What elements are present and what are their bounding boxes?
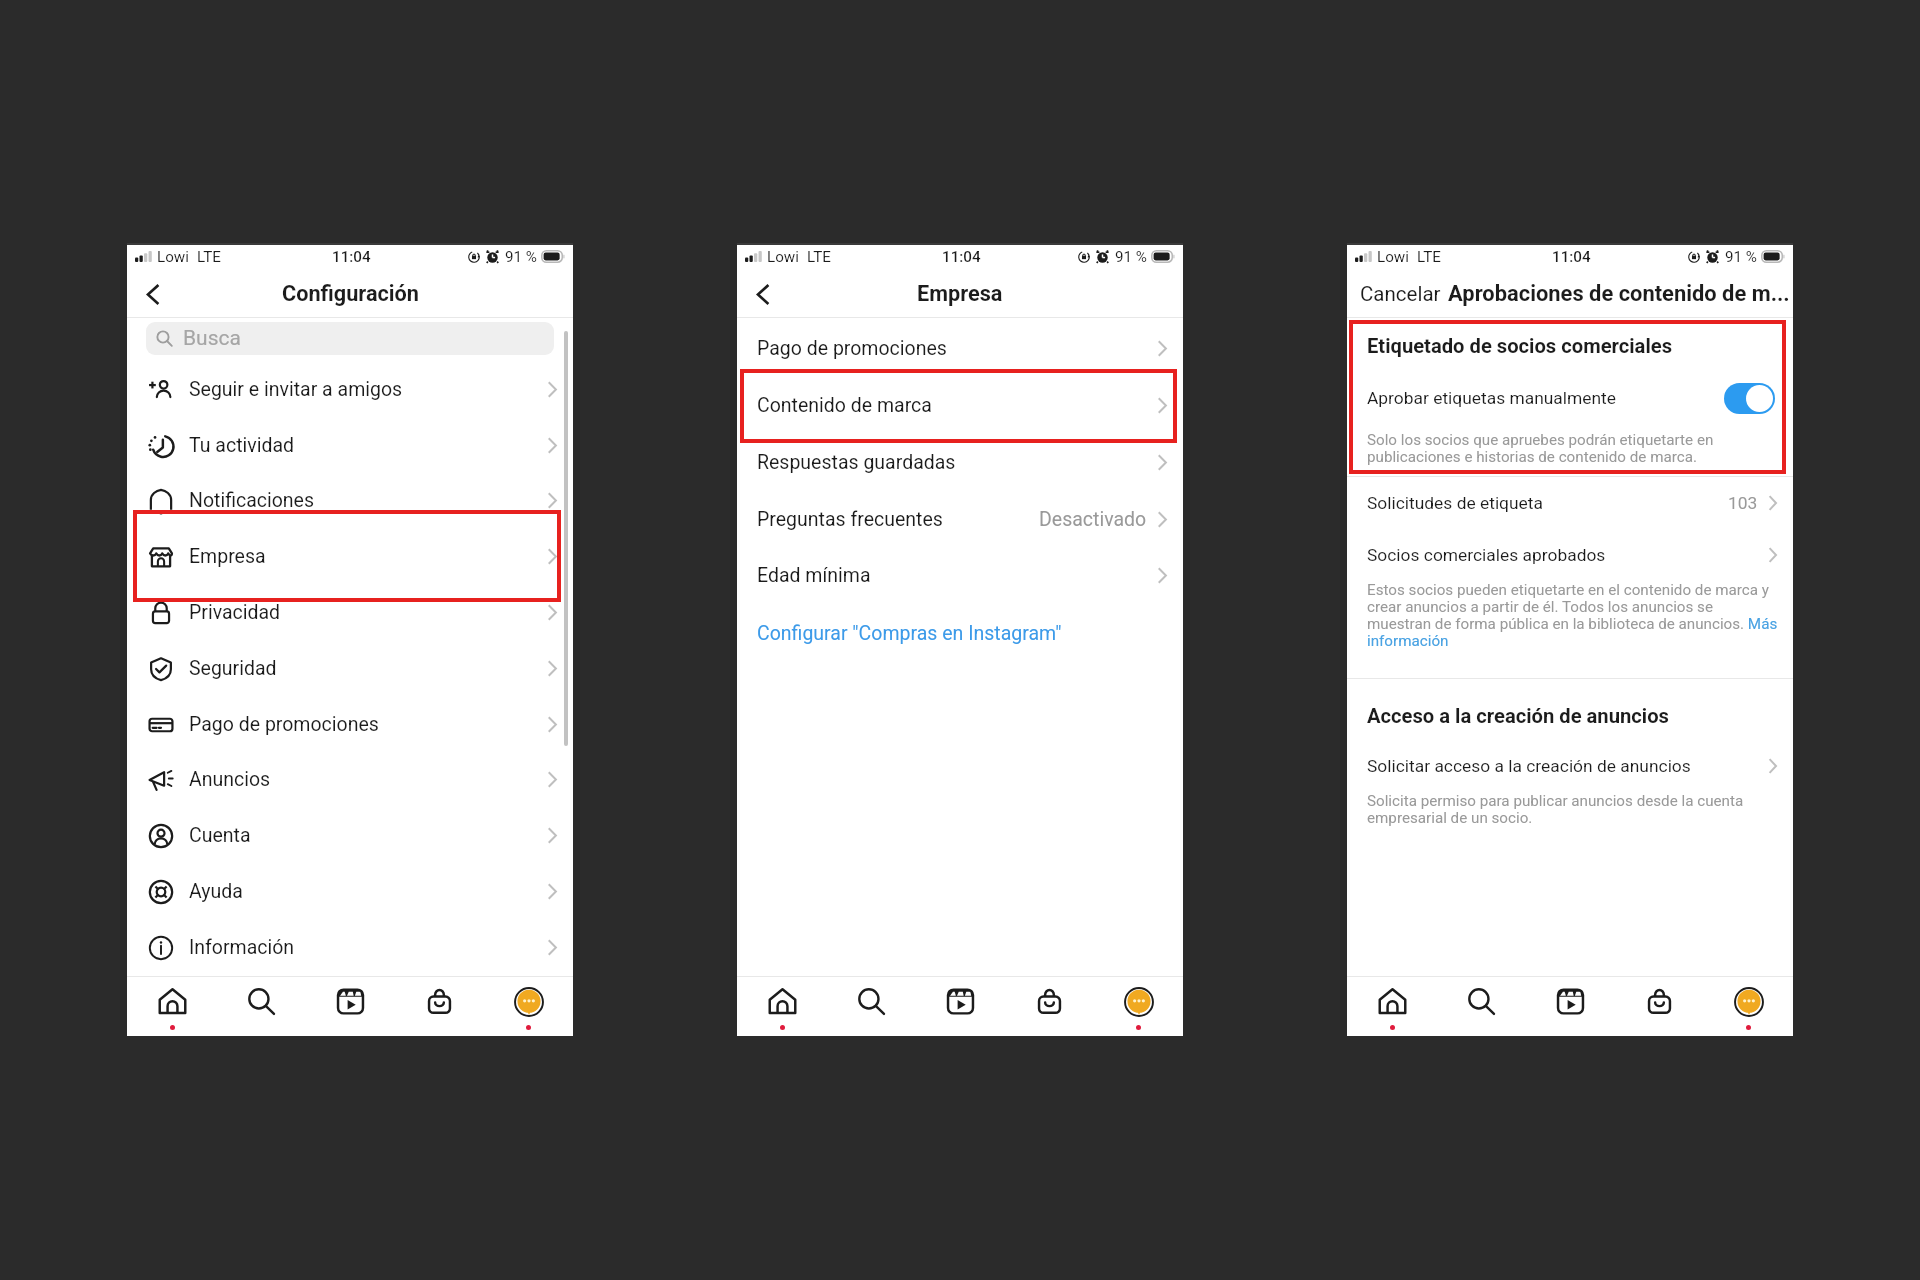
staticText: Lowi (767, 248, 799, 266)
button[interactable]: Aprobar etiquetas manualmente (1724, 383, 1775, 414)
staticText: 91 % (505, 248, 537, 266)
button[interactable]: Notificaciones (127, 472, 573, 528)
button[interactable]: Shop (395, 977, 484, 1036)
staticText: Seguridad (189, 657, 277, 680)
button[interactable]: Reels (1526, 977, 1615, 1036)
button[interactable]: Profile (484, 977, 573, 1036)
staticText: LTE (1417, 248, 1441, 266)
staticText: 103 (1728, 493, 1758, 513)
staticText: Busca (183, 326, 241, 351)
staticText: Empresa (917, 281, 1003, 306)
button[interactable]: Pago de promociones (737, 320, 1183, 376)
button[interactable]: Back (135, 277, 169, 311)
button[interactable]: Privacidad (127, 584, 573, 640)
button[interactable]: Seguridad (127, 640, 573, 696)
button[interactable]: Shop (1615, 977, 1704, 1036)
staticText: Lowi (157, 248, 189, 266)
button[interactable]: Solicitar acceso a la creación de anunci… (1347, 738, 1793, 794)
staticText: Lowi (1377, 248, 1409, 266)
staticText: 91 % (1725, 248, 1757, 266)
staticText: Tu actividad (189, 434, 295, 457)
staticText: Preguntas frecuentes (757, 508, 943, 531)
staticText: Socios comerciales aprobados (1367, 545, 1606, 565)
staticText: 11:04 (332, 248, 371, 266)
button[interactable]: Seguir e invitar a amigos (127, 361, 573, 417)
button[interactable]: Search (1437, 977, 1526, 1036)
staticText: Etiquetado de socios comerciales (1367, 334, 1673, 358)
staticText: LTE (807, 248, 831, 266)
button[interactable]: Socios comerciales aprobados (1347, 527, 1793, 583)
button[interactable]: Ayuda (127, 863, 573, 919)
button[interactable]: Home (737, 977, 827, 1036)
staticText: Cuenta (189, 824, 251, 847)
button[interactable]: Busca (146, 322, 554, 355)
staticText: Respuestas guardadas (757, 451, 956, 474)
button[interactable]: Información (127, 919, 573, 975)
staticText: Aprobar etiquetas manualmente (1367, 388, 1617, 408)
button[interactable]: Tu actividad (127, 417, 573, 473)
button[interactable]: Back (745, 277, 779, 311)
staticText: 11:04 (942, 248, 981, 266)
button[interactable]: Respuestas guardadas (737, 434, 1183, 490)
button[interactable]: Edad mínima (737, 547, 1183, 603)
button[interactable]: Cuenta (127, 807, 573, 863)
button[interactable]: Home (127, 977, 217, 1036)
staticText: Contenido de marca (757, 394, 932, 417)
staticText: Anuncios (189, 768, 271, 791)
staticText: Acceso a la creación de anuncios (1367, 704, 1669, 728)
staticText: Solicita permiso para publicar anuncios … (1367, 792, 1744, 827)
staticText: Edad mínima (757, 564, 871, 587)
button[interactable]: Search (827, 977, 916, 1036)
button[interactable]: Profile (1094, 977, 1183, 1036)
staticText: Aprobaciones de contenido de m... (1448, 281, 1790, 307)
button[interactable]: Profile (1704, 977, 1793, 1036)
staticText: Configuración (282, 281, 419, 306)
button[interactable]: Empresa (127, 528, 573, 584)
button[interactable]: Reels (306, 977, 395, 1036)
staticText: Solicitar acceso a la creación de anunci… (1367, 756, 1691, 776)
staticText: 11:04 (1552, 248, 1591, 266)
button[interactable]: Anuncios (127, 751, 573, 807)
staticText: LTE (197, 248, 221, 266)
staticText: Información (189, 936, 295, 959)
button[interactable]: Reels (916, 977, 1005, 1036)
staticText: Ayuda (189, 880, 243, 903)
button[interactable]: Search (217, 977, 306, 1036)
button[interactable]: Configurar "Compras en Instagram" (737, 605, 1183, 661)
staticText: 91 % (1115, 248, 1147, 266)
staticText: Privacidad (189, 601, 281, 624)
button[interactable]: Contenido de marca (737, 377, 1183, 433)
staticText: Pago de promociones (757, 337, 947, 360)
staticText: Seguir e invitar a amigos (189, 378, 403, 401)
staticText: Empresa (189, 545, 266, 568)
button[interactable]: Shop (1005, 977, 1094, 1036)
staticText: Notificaciones (189, 489, 315, 512)
staticText: Solicitudes de etiqueta (1367, 493, 1543, 513)
staticText: Configurar "Compras en Instagram" (757, 622, 1062, 645)
button[interactable]: Aprobar etiquetas manualmente (1347, 380, 1793, 416)
staticText: Estos socios pueden etiquetarte en el co… (1367, 581, 1778, 650)
button[interactable]: Cancelar (1360, 282, 1441, 306)
button[interactable]: Preguntas frecuentes (737, 491, 1183, 547)
button[interactable]: Solicitudes de etiqueta (1347, 475, 1793, 531)
button[interactable]: Home (1347, 977, 1437, 1036)
staticText: Solo los socios que apruebes podrán etiq… (1367, 431, 1714, 466)
staticText: Desactivado (1039, 508, 1147, 531)
staticText: Pago de promociones (189, 713, 379, 736)
button[interactable]: Pago de promociones (127, 696, 573, 752)
